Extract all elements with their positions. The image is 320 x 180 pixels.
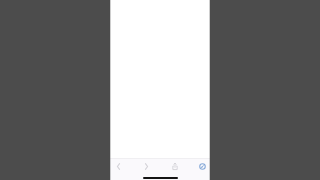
button[interactable]: Forward [141,161,152,172]
button[interactable]: Safari [197,161,208,172]
button[interactable]: Back [113,161,124,172]
button[interactable]: Share [169,161,180,172]
